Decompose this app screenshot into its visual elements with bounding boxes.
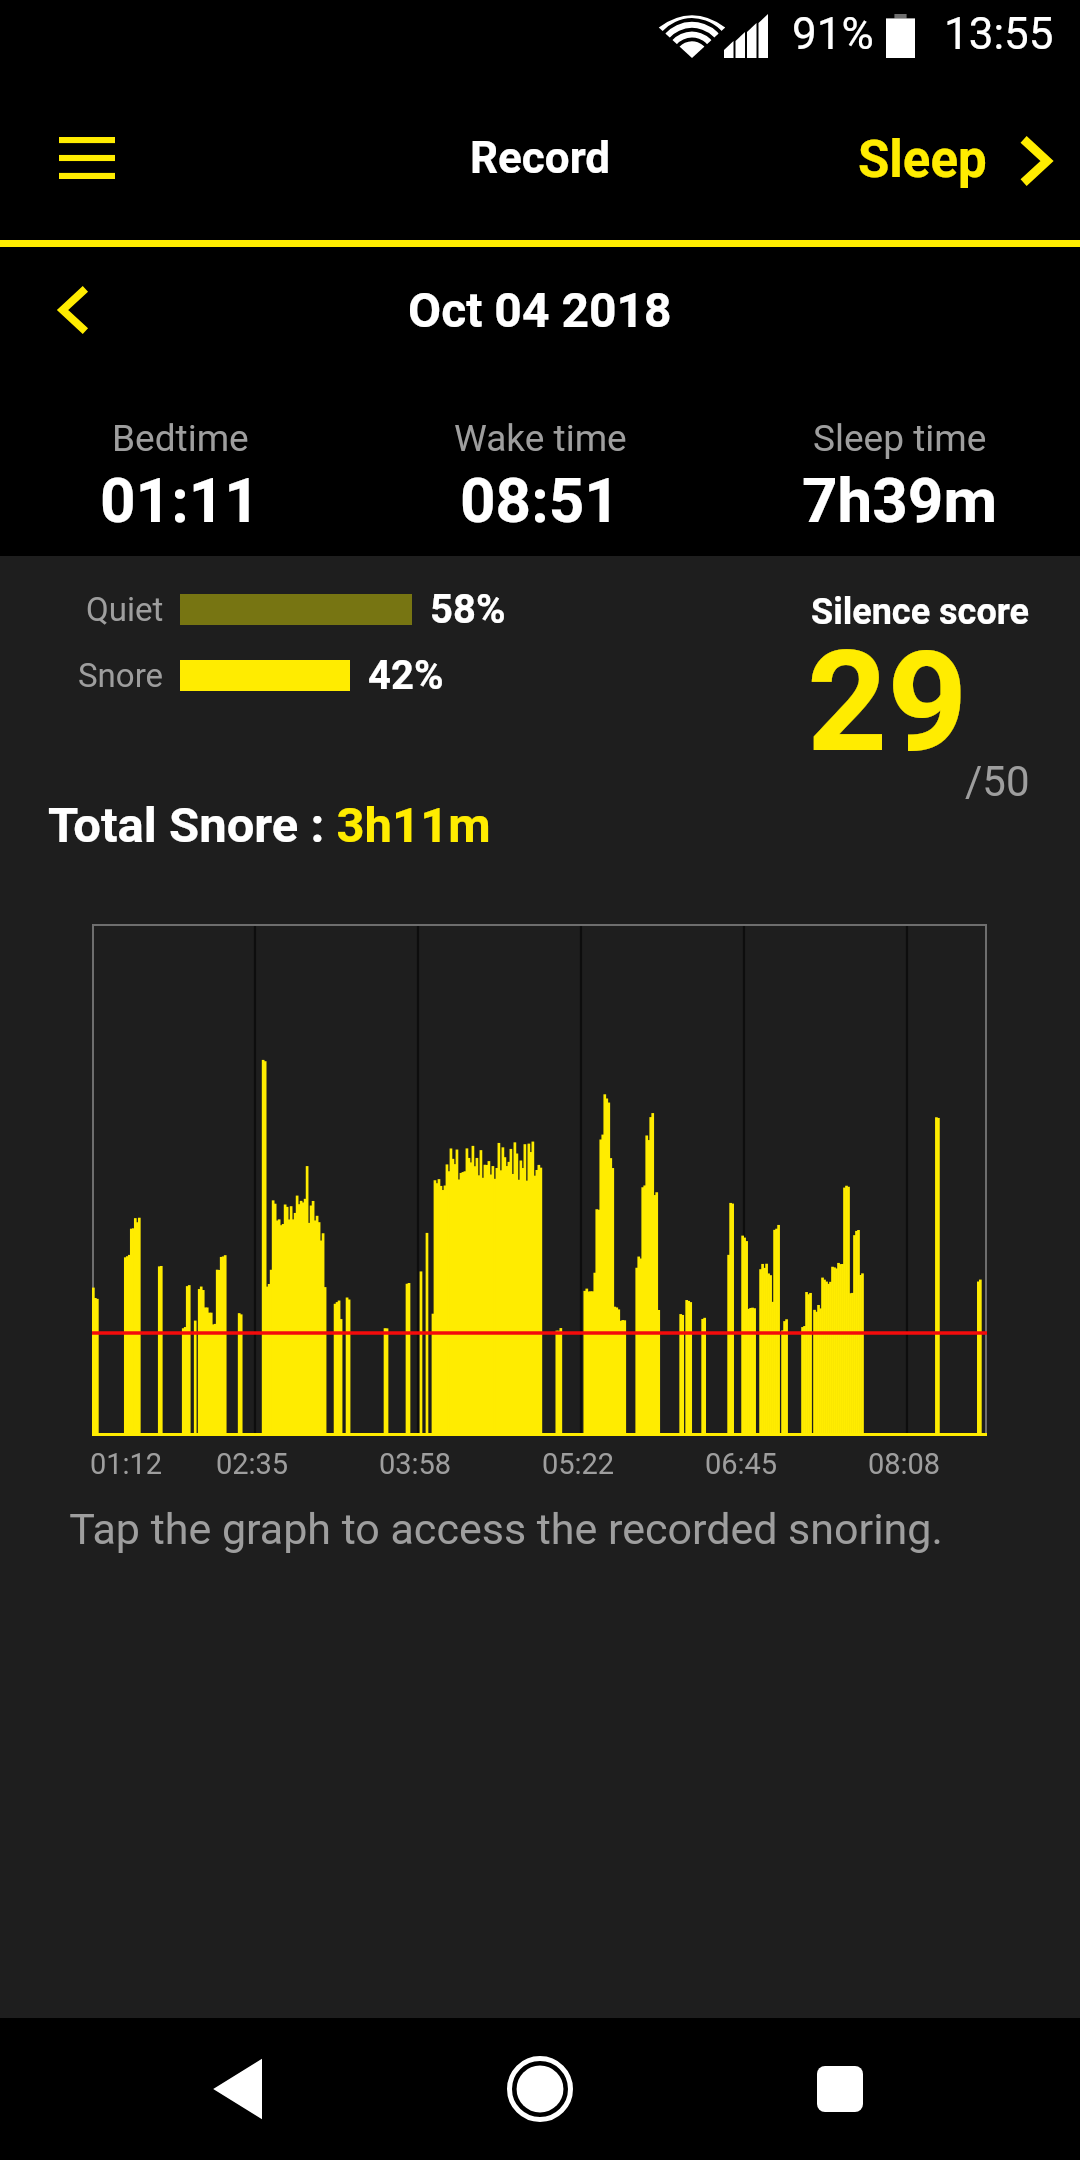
staticText: 02:35 <box>202 1447 302 1481</box>
staticText: Tap the graph to access the recorded sno… <box>0 1504 1012 1554</box>
staticText: Total Snore : 3h11m <box>48 797 491 854</box>
button[interactable]: Menu <box>39 110 135 206</box>
staticText: 08:51 <box>460 464 620 537</box>
staticText: Quiet <box>86 590 164 629</box>
staticText: 01:12 <box>76 1447 176 1481</box>
button[interactable]: Home <box>480 2029 600 2149</box>
staticText: 08:08 <box>854 1447 954 1481</box>
staticText: 05:22 <box>528 1447 628 1481</box>
staticText: 58% <box>430 586 506 633</box>
staticText: 06:45 <box>691 1447 791 1481</box>
staticText: Wake time <box>454 417 627 460</box>
staticText: Sleep time <box>813 417 987 460</box>
button[interactable]: Snore graph <box>92 924 987 1436</box>
staticText: 29 <box>807 620 968 784</box>
staticText: 03:58 <box>365 1447 465 1481</box>
staticText: 91% <box>792 8 874 56</box>
button[interactable]: Sleep <box>858 131 1050 191</box>
staticText: Sleep <box>858 130 987 190</box>
button[interactable]: Recent apps <box>780 2029 900 2149</box>
staticText: Silence score <box>811 591 1030 633</box>
staticText: 42% <box>368 652 444 699</box>
staticText: Oct 04 2018 <box>408 282 672 338</box>
staticText: 13:55 <box>944 8 1054 56</box>
button[interactable]: Previous day <box>26 262 122 358</box>
staticText: 7h39m <box>802 464 998 537</box>
staticText: /50 <box>965 757 1030 806</box>
staticText: Record <box>470 132 611 184</box>
staticText: Snore <box>78 656 164 695</box>
button[interactable]: Back <box>180 2029 300 2149</box>
staticText: Bedtime <box>112 417 249 460</box>
staticText: 01:11 <box>100 464 260 537</box>
